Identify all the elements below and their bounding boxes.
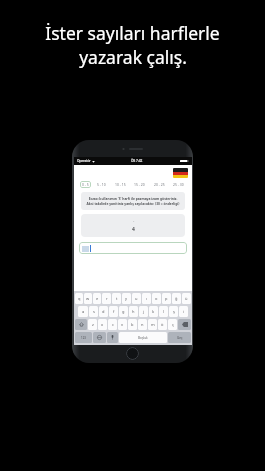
- staticText: Eczacı kullanımın 'S' harfi ile pazmaya …: [85, 196, 181, 206]
- button[interactable]: o: [152, 293, 161, 304]
- staticText: a: [82, 309, 85, 314]
- button[interactable]: 15 - 20: [132, 181, 147, 188]
- button[interactable]: 5 - 10: [95, 181, 108, 188]
- staticText: t: [116, 296, 118, 301]
- button[interactable]: w: [84, 293, 92, 304]
- button[interactable]: ş: [169, 306, 178, 317]
- button[interactable]: ı: [142, 293, 151, 304]
- staticText: ş: [173, 309, 175, 314]
- button[interactable]: 25 - 30: [171, 181, 186, 188]
- staticText: s: [93, 309, 95, 314]
- button[interactable]: Geç: [168, 332, 191, 343]
- button[interactable]: Mikrofon: [107, 332, 118, 343]
- button[interactable]: j: [139, 306, 148, 317]
- button[interactable]: Eczacı kullanımın 'S' harfi ile pazmaya …: [81, 192, 185, 210]
- button[interactable]: t: [112, 293, 121, 304]
- button[interactable]: a: [78, 306, 88, 317]
- button[interactable]: [79, 242, 187, 254]
- staticText: f: [113, 309, 115, 314]
- staticText: r: [106, 296, 108, 301]
- staticText: v: [121, 322, 124, 327]
- staticText: 20 - 25: [154, 182, 165, 187]
- button[interactable]: ö: [158, 319, 167, 330]
- button[interactable]: b: [128, 319, 137, 330]
- staticText: 25 - 30: [173, 182, 184, 187]
- staticText: o: [155, 296, 158, 301]
- button[interactable]: r: [102, 293, 111, 304]
- button[interactable]: 10 - 15: [113, 181, 128, 188]
- button[interactable]: i: [179, 306, 188, 317]
- staticText: 0 - 5: [82, 182, 89, 187]
- button[interactable]: d: [99, 306, 108, 317]
- staticText: e: [96, 296, 99, 301]
- button[interactable]: g: [119, 306, 128, 317]
- button[interactable]: Boşluk: [119, 332, 167, 343]
- button[interactable]: z: [88, 319, 97, 330]
- button[interactable]: Emoji: [93, 332, 106, 343]
- button[interactable]: c: [108, 319, 117, 330]
- staticText: d: [102, 309, 105, 314]
- button[interactable]: k: [149, 306, 158, 317]
- staticText: 10 - 15: [115, 182, 126, 187]
- button[interactable]: v: [118, 319, 127, 330]
- staticText: Geç: [177, 336, 183, 340]
- staticText: m: [151, 322, 155, 327]
- staticText: y: [125, 296, 128, 301]
- staticText: b: [131, 322, 134, 327]
- button[interactable]: s: [89, 306, 98, 317]
- button[interactable]: ü: [182, 293, 191, 304]
- staticText: n: [141, 322, 144, 327]
- button[interactable]: Dil seçimi: [173, 168, 188, 178]
- button[interactable]: p: [162, 293, 171, 304]
- staticText: ö: [161, 322, 164, 327]
- button[interactable]: Büyük harf: [75, 319, 87, 330]
- staticText: g: [122, 309, 125, 314]
- staticText: i: [183, 309, 185, 314]
- staticText: Boşluk: [138, 336, 148, 340]
- button[interactable]: y: [122, 293, 131, 304]
- button[interactable]: u: [132, 293, 141, 304]
- button[interactable]: Sil: [178, 319, 191, 330]
- button[interactable]: e: [93, 293, 101, 304]
- staticText: x: [101, 322, 104, 327]
- staticText: ı: [146, 296, 148, 301]
- staticText: k: [152, 309, 155, 314]
- button[interactable]: 0 - 5: [80, 181, 91, 188]
- staticText: l: [163, 309, 165, 314]
- staticText: Operatör: [77, 159, 91, 163]
- staticText: w: [86, 296, 90, 301]
- staticText: 123: [81, 336, 86, 340]
- staticText: yazarak çalış.: [79, 45, 187, 69]
- staticText: 4: [132, 226, 135, 233]
- staticText: -: [133, 218, 135, 223]
- staticText: q: [78, 296, 81, 301]
- staticText: ğ: [175, 296, 178, 301]
- staticText: c: [112, 322, 114, 327]
- staticText: p: [165, 296, 168, 301]
- staticText: j: [143, 309, 145, 314]
- staticText: ü: [185, 296, 188, 301]
- button[interactable]: f: [109, 306, 118, 317]
- button[interactable]: m: [148, 319, 157, 330]
- button[interactable]: n: [138, 319, 147, 330]
- staticText: 5 - 10: [97, 182, 106, 187]
- button[interactable]: l: [159, 306, 168, 317]
- button[interactable]: ğ: [172, 293, 181, 304]
- staticText: ÖS 7:42: [131, 159, 143, 163]
- staticText: 15 - 20: [134, 182, 145, 187]
- button[interactable]: x: [98, 319, 107, 330]
- button[interactable]: 123: [75, 332, 92, 343]
- button[interactable]: h: [129, 306, 138, 317]
- staticText: ç: [172, 322, 174, 327]
- staticText: İster sayıları harflerle: [45, 21, 220, 45]
- staticText: h: [132, 309, 135, 314]
- button[interactable]: q: [75, 293, 83, 304]
- staticText: z: [92, 322, 94, 327]
- button[interactable]: ç: [168, 319, 177, 330]
- button[interactable]: 20 - 25: [152, 181, 167, 188]
- staticText: u: [135, 296, 138, 301]
